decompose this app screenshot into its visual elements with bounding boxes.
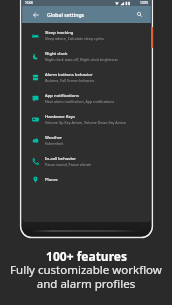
staticText: 10:06	[25, 1, 34, 5]
staticText: Next alarm notification, App notificatio…	[45, 99, 115, 104]
button[interactable]: Night clock	[22, 46, 152, 67]
button[interactable]: App notifications	[22, 88, 152, 109]
button[interactable]: Weather	[22, 130, 152, 151]
button[interactable]: Search	[133, 8, 146, 21]
staticText: 100%	[140, 1, 149, 5]
button[interactable]: Sleep tracking	[22, 25, 152, 46]
staticText: Hardware Keys	[45, 114, 75, 120]
staticText: Sleep advice, Calculate sleep cycles	[45, 36, 104, 41]
staticText: Global settings	[47, 11, 85, 18]
button[interactable]: In-call behavior	[22, 151, 152, 172]
staticText: Fully customizable workflow and alarm pr…	[10, 262, 162, 292]
staticText: Places	[45, 177, 58, 183]
staticText: Night clock auto-off, Night clock bright…	[45, 57, 118, 62]
button[interactable]: Hardware Keys	[22, 109, 152, 130]
staticText: 100+ features	[46, 248, 127, 264]
staticText: Fahrenheit	[45, 141, 64, 146]
button[interactable]: Alarm buttons behavior	[22, 67, 152, 88]
staticText: Sleep tracking	[45, 30, 74, 36]
button[interactable]: Places	[22, 172, 152, 187]
staticText: In-call behavior	[45, 156, 76, 162]
staticText: Buttons, Full Screen behavior	[45, 78, 95, 83]
staticText: App notifications	[45, 93, 79, 99]
button[interactable]: Back	[29, 8, 42, 21]
staticText: Volume Up Key Action, Volume Down Key Ac…	[45, 120, 127, 125]
staticText: Alarm buttons behavior	[45, 72, 93, 78]
staticText: Night clock	[45, 51, 68, 57]
staticText: Pause sound, Pause vibrate	[45, 162, 92, 167]
staticText: Weather	[45, 135, 63, 141]
